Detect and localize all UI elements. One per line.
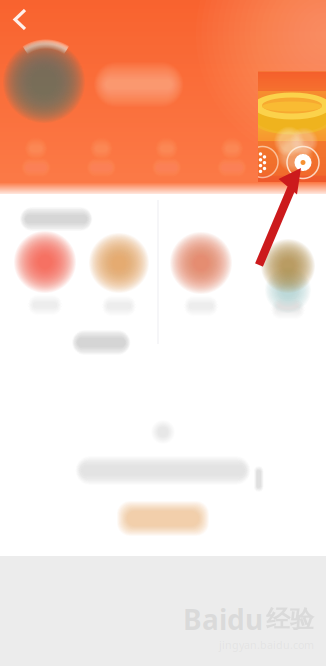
button[interactable]: Decorate: [245, 144, 280, 179]
button[interactable]: Stat: [6, 138, 66, 176]
button[interactable]: Badge 3: [168, 230, 234, 316]
button[interactable]: Badge 2: [86, 230, 152, 316]
button[interactable]: Badge 4: [255, 233, 321, 319]
button[interactable]: Badge 1: [12, 229, 78, 315]
button[interactable]: Settings: [285, 144, 321, 180]
button[interactable]: Stat: [137, 138, 197, 176]
staticText: Baidu: [183, 601, 263, 638]
staticText: 经验: [266, 604, 314, 634]
button[interactable]: Stat: [202, 138, 262, 176]
button[interactable]: Action: [117, 485, 209, 536]
button[interactable]: Back: [1, 1, 39, 37]
button[interactable]: Stat: [71, 138, 131, 176]
